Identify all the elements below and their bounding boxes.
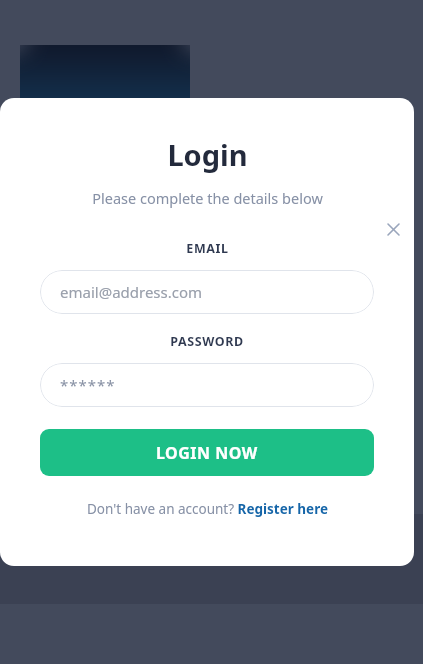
button[interactable]: Close <box>379 215 407 243</box>
staticText: Please complete the details below <box>92 188 323 208</box>
button[interactable]: Don't have an account? Register here <box>79 497 336 521</box>
staticText: Don't have an account? Register here <box>87 500 328 518</box>
staticText: LOGIN NOW <box>156 442 258 464</box>
button[interactable]: ****** <box>40 363 374 407</box>
staticText: email@address.com <box>60 282 203 302</box>
button[interactable]: LOGIN NOW <box>40 429 374 476</box>
staticText: EMAIL <box>186 240 229 257</box>
button[interactable]: email@address.com <box>40 270 374 314</box>
staticText: ****** <box>60 375 116 395</box>
staticText: PASSWORD <box>170 333 244 350</box>
staticText: Login <box>167 135 248 174</box>
